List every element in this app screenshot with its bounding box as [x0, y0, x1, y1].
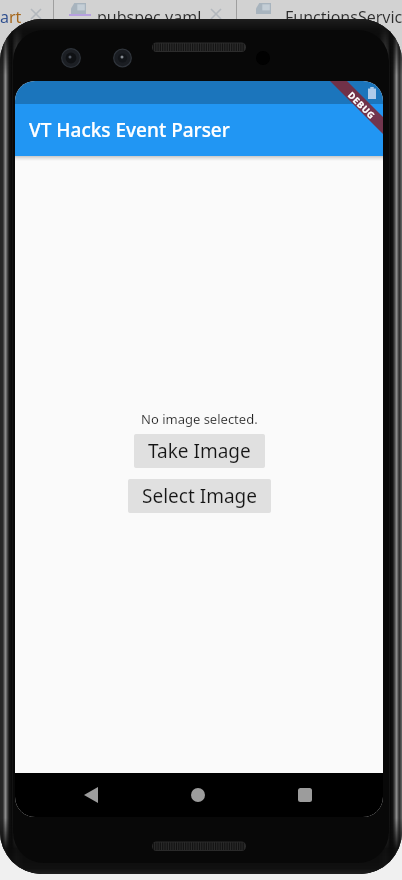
- staticText: DEBUG: [346, 89, 378, 121]
- button[interactable]: Take Image: [134, 434, 265, 468]
- staticText: FunctionsServic: [285, 6, 402, 27]
- staticText: VT Hacks Event Parser: [29, 117, 230, 143]
- staticText: pubspec.yaml: [97, 6, 202, 27]
- staticText: Take Image: [148, 438, 251, 464]
- button[interactable]: Home: [170, 773, 226, 817]
- staticText: Select Image: [142, 483, 257, 509]
- staticText: No image selected.: [141, 410, 258, 428]
- staticText: a: [0, 6, 9, 27]
- button[interactable]: Select Image: [128, 479, 271, 513]
- button[interactable]: Back: [63, 773, 119, 817]
- staticText: rt: [9, 6, 22, 27]
- button[interactable]: Recent apps: [277, 773, 333, 817]
